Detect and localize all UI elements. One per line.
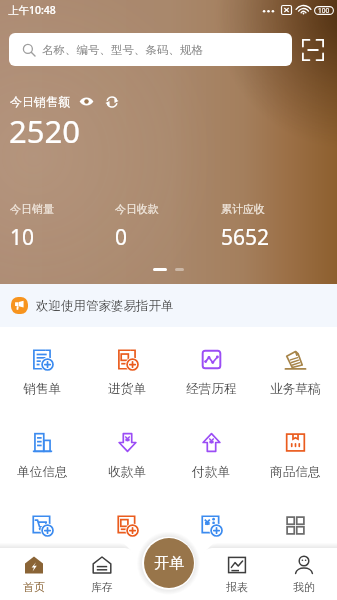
button[interactable]: 开单 [144,538,194,588]
staticText: 经营历程 [186,381,237,397]
staticText: 100 [318,6,330,15]
staticText: 0 [115,223,128,252]
button[interactable] [253,515,337,536]
staticText: 我的 [293,580,315,594]
staticText: 业务草稿 [270,381,321,397]
staticText: 开单 [154,554,184,573]
button[interactable]: 首页 [0,548,68,600]
staticText: 5652 [221,223,270,252]
button[interactable]: Toggle amount visibility [78,93,95,110]
staticText: 今日销售额 [10,94,70,109]
button[interactable]: 进货单 [85,349,169,397]
staticText: 首页 [23,580,45,594]
button[interactable]: Refresh [103,93,120,110]
button[interactable]: Scan barcode [292,29,333,70]
button[interactable]: 我的 [270,548,337,600]
button[interactable]: 单位信息 [0,432,85,480]
staticText: 收款单 [108,464,147,480]
button[interactable]: 名称、编号、型号、条码、规格 [9,33,292,66]
button[interactable] [85,515,169,536]
staticText: 名称、编号、型号、条码、规格 [42,43,203,57]
button[interactable] [0,515,85,536]
button[interactable]: 业务草稿 [253,349,337,397]
staticText: 商品信息 [270,464,321,480]
staticText: 报表 [226,580,248,594]
button[interactable] [169,515,253,536]
button[interactable]: 欢迎使用管家婆易指开单 [0,284,337,327]
staticText: 2520 [9,110,80,152]
staticText: 单位信息 [17,464,68,480]
staticText: 累计应收 [221,202,265,216]
button[interactable]: 商品信息 [253,432,337,480]
staticText: 今日销量 [10,202,54,216]
staticText: 欢迎使用管家婆易指开单 [36,298,174,314]
staticText: 销售单 [23,381,62,397]
staticText: 付款单 [192,464,231,480]
staticText: 进货单 [108,381,147,397]
staticText: 上午10:48 [8,3,56,17]
button[interactable]: 经营历程 [169,349,253,397]
button[interactable]: 库存 [68,548,136,600]
staticText: 库存 [91,580,113,594]
staticText: 今日收款 [115,202,159,216]
staticText: 10 [10,223,35,252]
button[interactable]: 报表 [203,548,270,600]
button[interactable]: 收款单 [85,432,169,480]
button[interactable]: 付款单 [169,432,253,480]
button[interactable]: 销售单 [0,349,85,397]
